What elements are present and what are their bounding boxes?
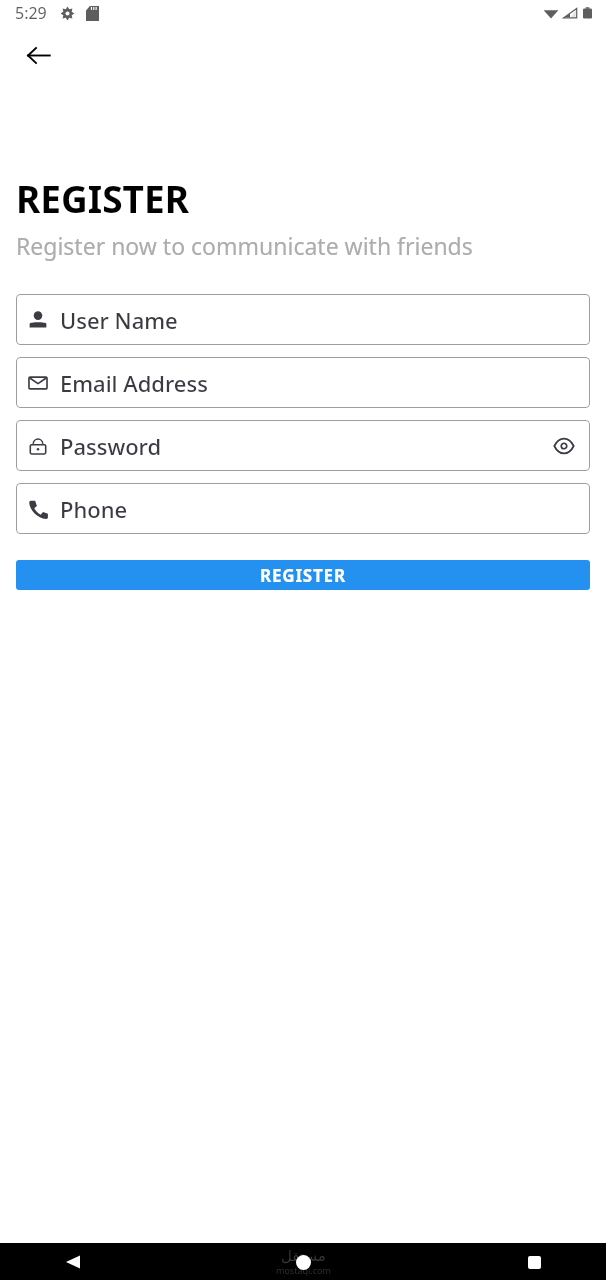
staticText: 5:29 bbox=[15, 2, 47, 24]
staticText: مستقل bbox=[281, 1247, 326, 1264]
button[interactable]: REGISTER bbox=[16, 560, 590, 590]
button[interactable]: Phone bbox=[16, 483, 590, 534]
button[interactable]: Show password bbox=[551, 433, 577, 459]
staticText: REGISTER bbox=[260, 564, 346, 587]
staticText: Phone bbox=[60, 494, 128, 524]
staticText: Email Address bbox=[60, 368, 208, 398]
staticText: User Name bbox=[60, 305, 178, 335]
button[interactable]: Home bbox=[288, 1247, 318, 1277]
button[interactable]: Password bbox=[16, 420, 590, 471]
staticText: Register now to communicate with friends bbox=[16, 230, 473, 261]
staticText: Password bbox=[60, 431, 162, 461]
button[interactable]: User Name bbox=[16, 294, 590, 345]
button[interactable]: Back bbox=[9, 26, 67, 84]
staticText: mostaql.com bbox=[276, 1264, 331, 1276]
button[interactable]: Back bbox=[58, 1247, 88, 1277]
staticText: REGISTER bbox=[16, 173, 189, 223]
button[interactable]: Recent apps bbox=[519, 1247, 549, 1277]
button[interactable]: Email Address bbox=[16, 357, 590, 408]
